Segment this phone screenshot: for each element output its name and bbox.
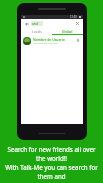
staticText: 12:30	[70, 15, 77, 19]
button[interactable]: Back	[24, 21, 29, 26]
button[interactable]: and	[31, 21, 43, 26]
staticText: Locals	[32, 29, 42, 34]
staticText: Global	[62, 29, 73, 34]
button[interactable]: Back	[21, 19, 83, 28]
button[interactable]: Nombre de Usuario	[21, 35, 83, 46]
button[interactable]: Add friend	[74, 37, 81, 44]
button[interactable]: Global	[52, 28, 83, 35]
staticText: Search for new friends all over the worl…	[4, 145, 99, 163]
staticText: and	[31, 21, 38, 26]
button[interactable]: Locals	[21, 28, 52, 35]
staticText: With Talk-Me you can search for them and	[4, 163, 99, 181]
staticText: Nombre de Usuario	[33, 37, 65, 42]
button[interactable]: Clear search	[75, 21, 80, 26]
